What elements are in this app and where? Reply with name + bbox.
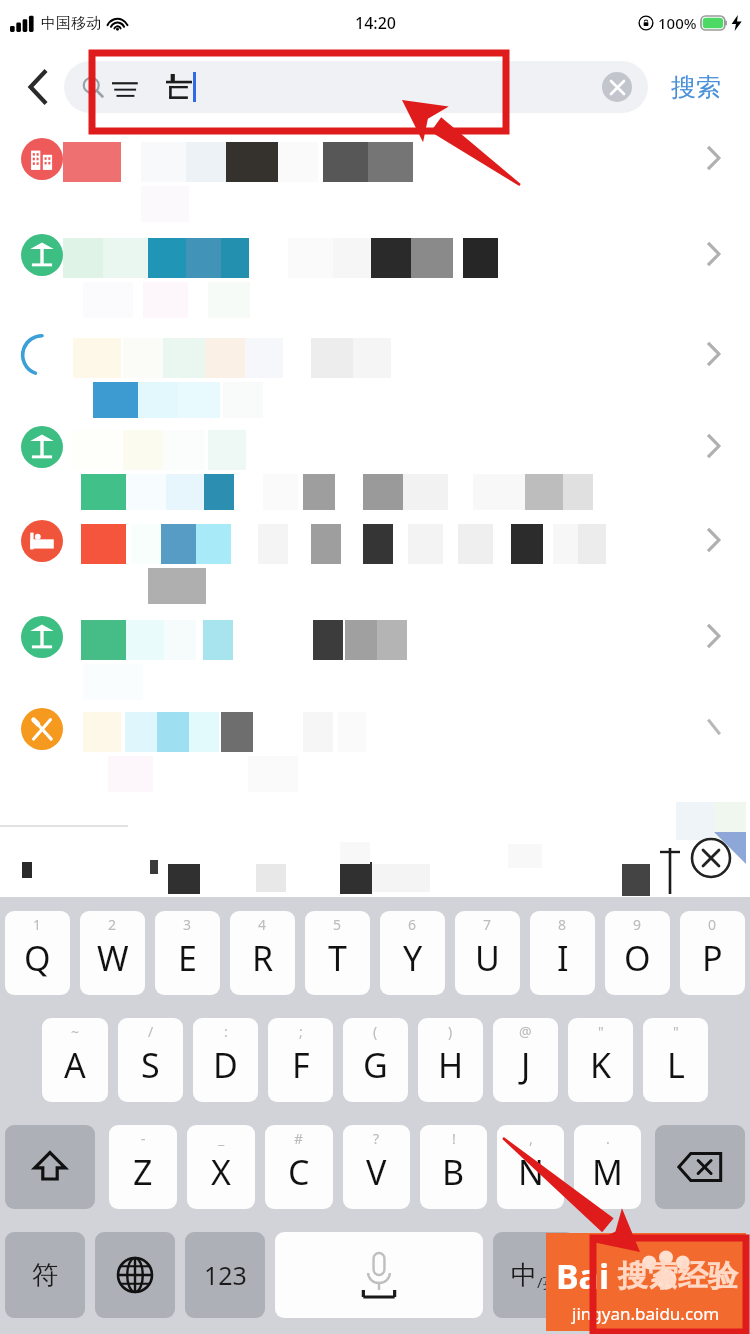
staticText: 搜索: [671, 72, 721, 103]
button[interactable]: /: [118, 1018, 183, 1102]
staticText: B: [442, 1149, 465, 1195]
button[interactable]: !: [420, 1125, 487, 1209]
button[interactable]: [0, 128, 750, 224]
button[interactable]: Chinese English toggle: [493, 1232, 575, 1318]
staticText: 中国移动: [41, 14, 101, 33]
button[interactable]: Clear: [64, 61, 648, 113]
button[interactable]: 2: [80, 911, 145, 995]
staticText: G: [363, 1042, 388, 1088]
staticText: 5: [333, 915, 342, 934]
button[interactable]: 5: [305, 911, 370, 995]
button[interactable]: 7: [455, 911, 520, 995]
staticText: ;: [299, 1022, 303, 1041]
staticText: H: [438, 1042, 464, 1088]
staticText: M: [592, 1149, 623, 1195]
staticText: ": [673, 1022, 679, 1041]
staticText: ?: [373, 1129, 380, 1148]
staticText: :: [224, 1022, 228, 1041]
staticText: N: [518, 1149, 544, 1195]
button[interactable]: 0: [680, 911, 745, 995]
staticText: /: [148, 1022, 154, 1041]
staticText: #: [294, 1129, 304, 1148]
button[interactable]: ": [568, 1018, 633, 1102]
button[interactable]: Switch language: [95, 1232, 175, 1318]
button[interactable]: [0, 324, 750, 416]
staticText: P: [702, 935, 723, 981]
staticText: .: [606, 1129, 610, 1148]
button[interactable]: Space: [275, 1232, 483, 1318]
staticText: A: [64, 1042, 86, 1088]
button[interactable]: 6: [380, 911, 445, 995]
staticText: /英: [537, 1272, 558, 1292]
staticText: 2: [108, 915, 117, 934]
button[interactable]: ?: [343, 1125, 410, 1209]
staticText: F: [292, 1042, 310, 1088]
staticText: 搜索经验: [618, 1257, 738, 1295]
button[interactable]: ;: [268, 1018, 333, 1102]
staticText: 123: [204, 1258, 247, 1292]
button[interactable]: [0, 416, 750, 510]
staticText: Y: [403, 935, 423, 981]
button[interactable]: Back: [12, 61, 64, 113]
staticText: 4: [258, 915, 267, 934]
staticText: W: [97, 935, 129, 981]
button[interactable]: 8: [530, 911, 595, 995]
staticText: L: [667, 1042, 685, 1088]
button[interactable]: ,: [497, 1125, 564, 1209]
button[interactable]: [0, 606, 750, 698]
staticText: (: [373, 1022, 378, 1041]
button[interactable]: 3: [155, 911, 220, 995]
staticText: 14:20: [355, 12, 396, 34]
staticText: I: [557, 935, 569, 981]
button[interactable]: Shift: [5, 1125, 95, 1209]
button[interactable]: .: [574, 1125, 641, 1209]
button[interactable]: ): [418, 1018, 483, 1102]
staticText: 6: [408, 915, 417, 934]
button[interactable]: _: [187, 1125, 255, 1209]
staticText: 3: [183, 915, 192, 934]
staticText: S: [141, 1042, 160, 1088]
staticText: 100%: [658, 13, 697, 33]
staticText: ": [598, 1022, 604, 1041]
button[interactable]: 4: [230, 911, 295, 995]
staticText: O: [624, 935, 651, 981]
staticText: K: [590, 1042, 612, 1088]
staticText: J: [521, 1042, 531, 1088]
button[interactable]: ": [643, 1018, 708, 1102]
button[interactable]: Backspace: [655, 1125, 745, 1209]
button[interactable]: (: [343, 1018, 408, 1102]
button[interactable]: 搜索: [654, 61, 738, 113]
staticText: @: [519, 1022, 532, 1041]
staticText: 0: [708, 915, 717, 934]
staticText: 8: [558, 915, 567, 934]
button[interactable]: :: [193, 1018, 258, 1102]
staticText: Bai: [556, 1253, 610, 1299]
staticText: D: [213, 1042, 238, 1088]
staticText: U: [475, 935, 500, 981]
button[interactable]: [0, 224, 750, 324]
staticText: -: [141, 1129, 146, 1148]
staticText: R: [252, 935, 274, 981]
staticText: E: [178, 935, 197, 981]
button[interactable]: [0, 510, 750, 606]
staticText: 9: [633, 915, 642, 934]
button[interactable]: ~: [42, 1018, 108, 1102]
button[interactable]: Close candidates: [690, 837, 732, 879]
staticText: 7: [483, 915, 492, 934]
staticText: V: [366, 1149, 387, 1195]
button[interactable]: @: [493, 1018, 558, 1102]
staticText: jingyan.baidu.com: [572, 1302, 720, 1325]
staticText: Z: [133, 1149, 153, 1195]
staticText: !: [452, 1129, 456, 1148]
staticText: 1: [33, 915, 42, 934]
button[interactable]: -: [109, 1125, 177, 1209]
button[interactable]: Clear: [602, 72, 632, 102]
button[interactable]: Symbols: [5, 1232, 85, 1318]
button[interactable]: 9: [605, 911, 670, 995]
button[interactable]: 1: [5, 911, 70, 995]
staticText: 中: [511, 1259, 537, 1292]
button[interactable]: #: [265, 1125, 333, 1209]
staticText: Q: [24, 935, 51, 981]
button[interactable]: Numbers: [185, 1232, 265, 1318]
button[interactable]: [0, 698, 750, 778]
